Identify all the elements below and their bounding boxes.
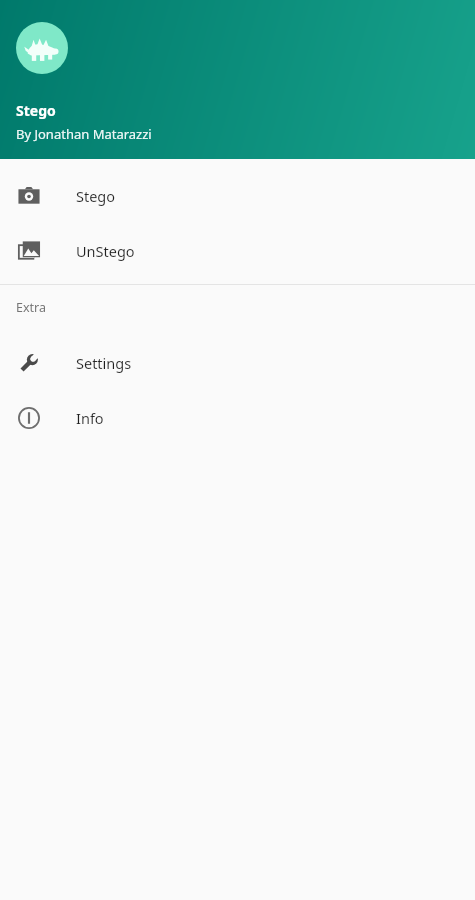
- staticText: Info: [76, 408, 104, 428]
- button[interactable]: [0, 58, 475, 900]
- button[interactable]: Info: [0, 390, 475, 445]
- staticText: UnStego: [76, 241, 135, 261]
- button[interactable]: Stego: [0, 168, 475, 223]
- staticText: Settings: [76, 353, 132, 373]
- staticText: Extra: [16, 299, 47, 316]
- button[interactable]: UnStego: [0, 223, 475, 278]
- staticText: By Jonathan Matarazzi: [16, 125, 152, 143]
- staticText: Stego: [76, 186, 116, 206]
- button[interactable]: Settings: [0, 335, 475, 390]
- staticText: Stego: [16, 101, 56, 120]
